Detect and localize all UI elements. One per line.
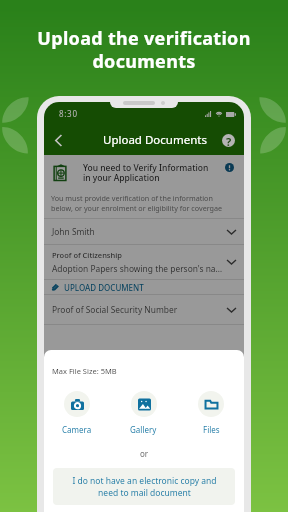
staticText: Adoption Papers showing the person's nam…: [52, 263, 223, 274]
staticText: Files: [203, 424, 220, 435]
button[interactable]: I do not have an electronic copy and nee…: [53, 468, 235, 505]
button[interactable]: Help: [222, 134, 235, 147]
button[interactable]: Camera: [60, 389, 94, 437]
staticText: Upload Documents: [103, 132, 207, 148]
staticText: John Smith: [52, 226, 95, 237]
button[interactable]: UPLOAD DOCUMENT: [44, 280, 244, 294]
staticText: 8:30: [59, 108, 78, 119]
staticText: You must provide verification of the inf…: [51, 193, 223, 213]
staticText: You need to Verify Information in your A…: [83, 162, 222, 184]
staticText: UPLOAD DOCUMENT: [64, 282, 144, 292]
button[interactable]: Info: [225, 163, 234, 172]
button[interactable]: Gallery: [128, 389, 159, 437]
button[interactable]: Files: [196, 389, 226, 437]
button[interactable]: John Smith: [44, 219, 244, 244]
button[interactable]: Proof of Social Security Number: [44, 295, 244, 324]
staticText: Max File Size: 5MB: [52, 366, 117, 376]
button[interactable]: Back: [44, 125, 72, 155]
staticText: Proof of Social Security Number: [52, 304, 178, 315]
staticText: ?: [226, 134, 232, 147]
staticText: Proof of Citizenship: [52, 250, 122, 260]
staticText: I do not have an electronic copy and nee…: [72, 475, 217, 499]
staticText: Gallery: [130, 424, 157, 435]
staticText: Camera: [62, 424, 92, 435]
button[interactable]: Proof of Citizenship: [44, 245, 244, 279]
staticText: or: [44, 448, 244, 459]
staticText: Upload the verification documents: [28, 26, 260, 73]
